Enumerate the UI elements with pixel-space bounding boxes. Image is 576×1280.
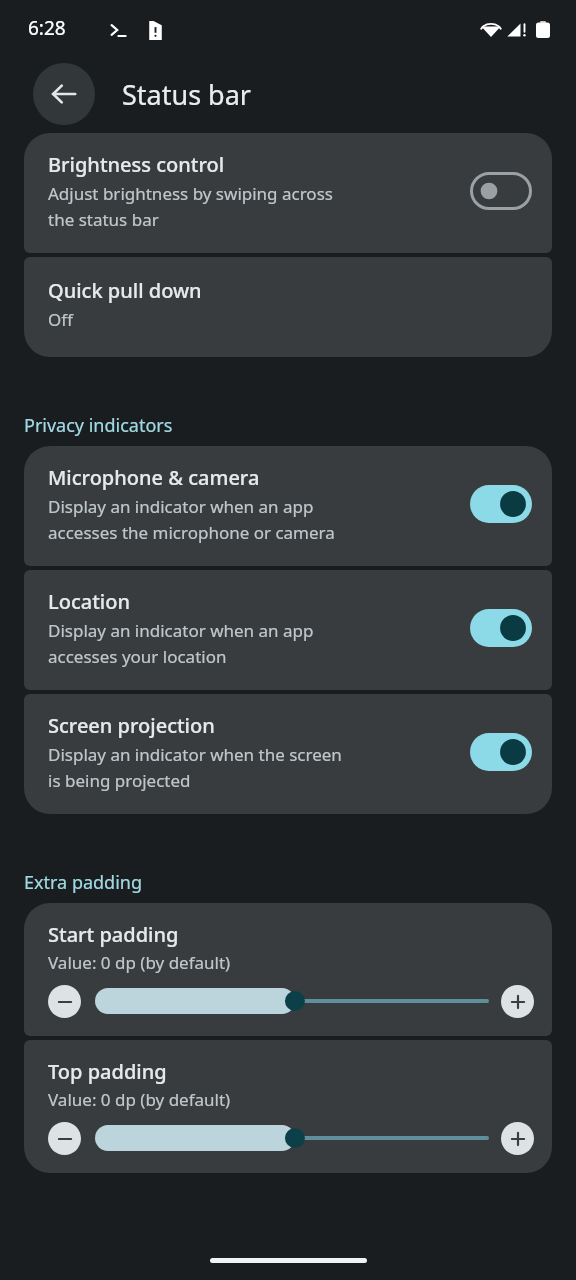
button[interactable]: Brightness control <box>24 133 552 253</box>
button[interactable]: On <box>470 609 532 647</box>
button[interactable]: Location <box>24 570 552 690</box>
staticText: Value: 0 dp (by default) <box>48 1088 231 1111</box>
staticText: Top padding <box>48 1058 167 1085</box>
staticText: Status bar <box>122 76 252 113</box>
staticText: Extra padding <box>24 870 143 895</box>
button[interactable] <box>95 984 487 1018</box>
button[interactable] <box>95 1121 487 1155</box>
staticText: Start padding <box>48 921 179 948</box>
staticText: Display an indicator when an app accesse… <box>48 619 314 668</box>
staticText: Quick pull down <box>48 277 202 304</box>
button[interactable]: Screen projection <box>24 694 552 814</box>
staticText: 6:28 <box>28 15 66 41</box>
staticText: Adjust brightness by swiping across the … <box>48 182 333 231</box>
button[interactable]: Quick pull down <box>24 257 552 357</box>
staticText: Off <box>48 308 73 331</box>
button[interactable]: Off <box>470 172 532 210</box>
button[interactable]: Increase <box>501 985 534 1018</box>
staticText: Microphone & camera <box>48 464 260 491</box>
staticText: Privacy indicators <box>24 413 173 438</box>
button[interactable]: Start padding <box>24 903 552 1036</box>
button[interactable]: Decrease <box>48 985 81 1018</box>
staticText: Location <box>48 588 130 615</box>
staticText: Display an indicator when an app accesse… <box>48 495 335 544</box>
button[interactable]: Increase <box>501 1122 534 1155</box>
button[interactable]: Top padding <box>24 1040 552 1173</box>
button[interactable]: On <box>470 733 532 771</box>
button[interactable]: On <box>470 485 532 523</box>
staticText: Screen projection <box>48 712 215 739</box>
button[interactable]: Back <box>33 63 95 125</box>
button[interactable]: Microphone & camera <box>24 446 552 566</box>
staticText: Brightness control <box>48 151 225 178</box>
button[interactable]: Decrease <box>48 1122 81 1155</box>
staticText: Value: 0 dp (by default) <box>48 951 231 974</box>
staticText: Display an indicator when the screen is … <box>48 743 342 792</box>
